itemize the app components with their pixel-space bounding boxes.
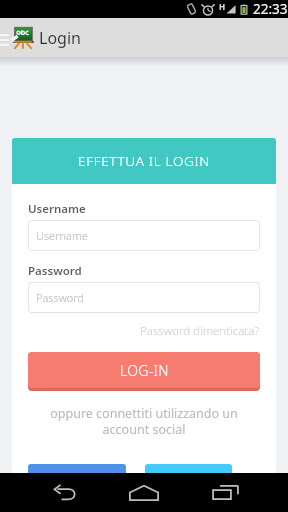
- button[interactable]: Login with Facebook: [28, 464, 126, 494]
- staticText: Password: [36, 290, 84, 305]
- button[interactable]: Back: [28, 473, 100, 512]
- button[interactable]: Recent apps: [189, 473, 261, 512]
- staticText: Username: [28, 201, 86, 217]
- staticText: H: [219, 1, 226, 12]
- button[interactable]: EFFETTUA IL LOGIN: [12, 138, 276, 184]
- button[interactable]: Password dimenticata?: [28, 323, 260, 339]
- staticText: oppure connettiti utilizzando un account…: [28, 405, 260, 437]
- button[interactable]: Home: [108, 473, 180, 512]
- staticText: EFFETTUA IL LOGIN: [78, 152, 210, 170]
- staticText: 22:33: [253, 0, 288, 18]
- button[interactable]: LOG-IN: [28, 352, 260, 391]
- staticText: Password dimenticata?: [140, 323, 260, 339]
- button[interactable]: Username: [28, 220, 260, 251]
- staticText: Username: [36, 228, 88, 243]
- button[interactable]: Password: [28, 282, 260, 313]
- staticText: Login: [39, 27, 81, 49]
- staticText: LOG-IN: [120, 361, 169, 380]
- button[interactable]: Open navigation drawer: [0, 18, 288, 57]
- button[interactable]: Login with Twitter: [145, 464, 232, 494]
- staticText: Password: [28, 263, 82, 279]
